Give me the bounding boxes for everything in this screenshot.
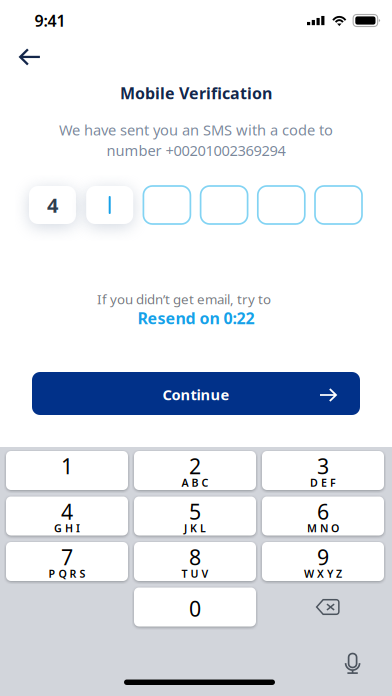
button[interactable]: Back (7, 37, 53, 77)
button[interactable]: 9 (262, 542, 384, 581)
button[interactable]: 0 (134, 587, 256, 626)
button[interactable]: Dictate (345, 652, 360, 674)
button[interactable] (86, 186, 133, 224)
staticText: 9 (317, 543, 329, 571)
button[interactable]: 6 (262, 496, 384, 535)
staticText: P Q R S (48, 566, 85, 581)
staticText: G H I (54, 521, 80, 535)
staticText: Continue (162, 385, 229, 404)
staticText: number +00201002369294 (106, 140, 285, 160)
button[interactable] (143, 186, 190, 224)
button[interactable] (201, 186, 248, 224)
staticText: 3 (317, 452, 329, 480)
button[interactable] (258, 186, 305, 224)
button[interactable]: Continue (32, 372, 360, 415)
staticText: 6 (317, 497, 329, 526)
button[interactable]: 1 (6, 451, 128, 490)
staticText: Mobile Verification (120, 82, 272, 104)
staticText: If you didn’t get email, try to (97, 290, 271, 308)
staticText: Resend on 0:22 (137, 307, 254, 329)
staticText: 5 (189, 497, 201, 526)
button[interactable]: Resend on 0:22 (0, 310, 392, 326)
staticText: 8 (189, 543, 201, 571)
staticText: 4 (61, 497, 73, 526)
staticText: A B C (181, 475, 208, 490)
staticText: 0 (189, 594, 201, 623)
staticText: 7 (61, 543, 73, 571)
button[interactable]: 8 (134, 542, 256, 581)
button[interactable]: 2 (134, 451, 256, 490)
staticText: 2 (189, 452, 201, 480)
button[interactable]: 7 (6, 542, 128, 581)
staticText: 9:41 (34, 10, 65, 31)
staticText: W X Y Z (304, 566, 342, 581)
staticText: M N O (307, 521, 339, 535)
staticText: D E F (310, 475, 336, 490)
button[interactable]: 4 (29, 186, 76, 224)
staticText: 1 (61, 452, 73, 480)
button[interactable] (315, 186, 362, 224)
staticText: We have sent you an SMS with a code to (59, 120, 333, 139)
button[interactable]: 5 (134, 496, 256, 535)
staticText: 4 (47, 192, 58, 218)
staticText: J K L (184, 521, 206, 535)
staticText: T U V (181, 566, 208, 581)
button[interactable]: 4 (6, 496, 128, 535)
button[interactable]: 3 (262, 451, 384, 490)
button[interactable]: Delete (262, 587, 384, 626)
